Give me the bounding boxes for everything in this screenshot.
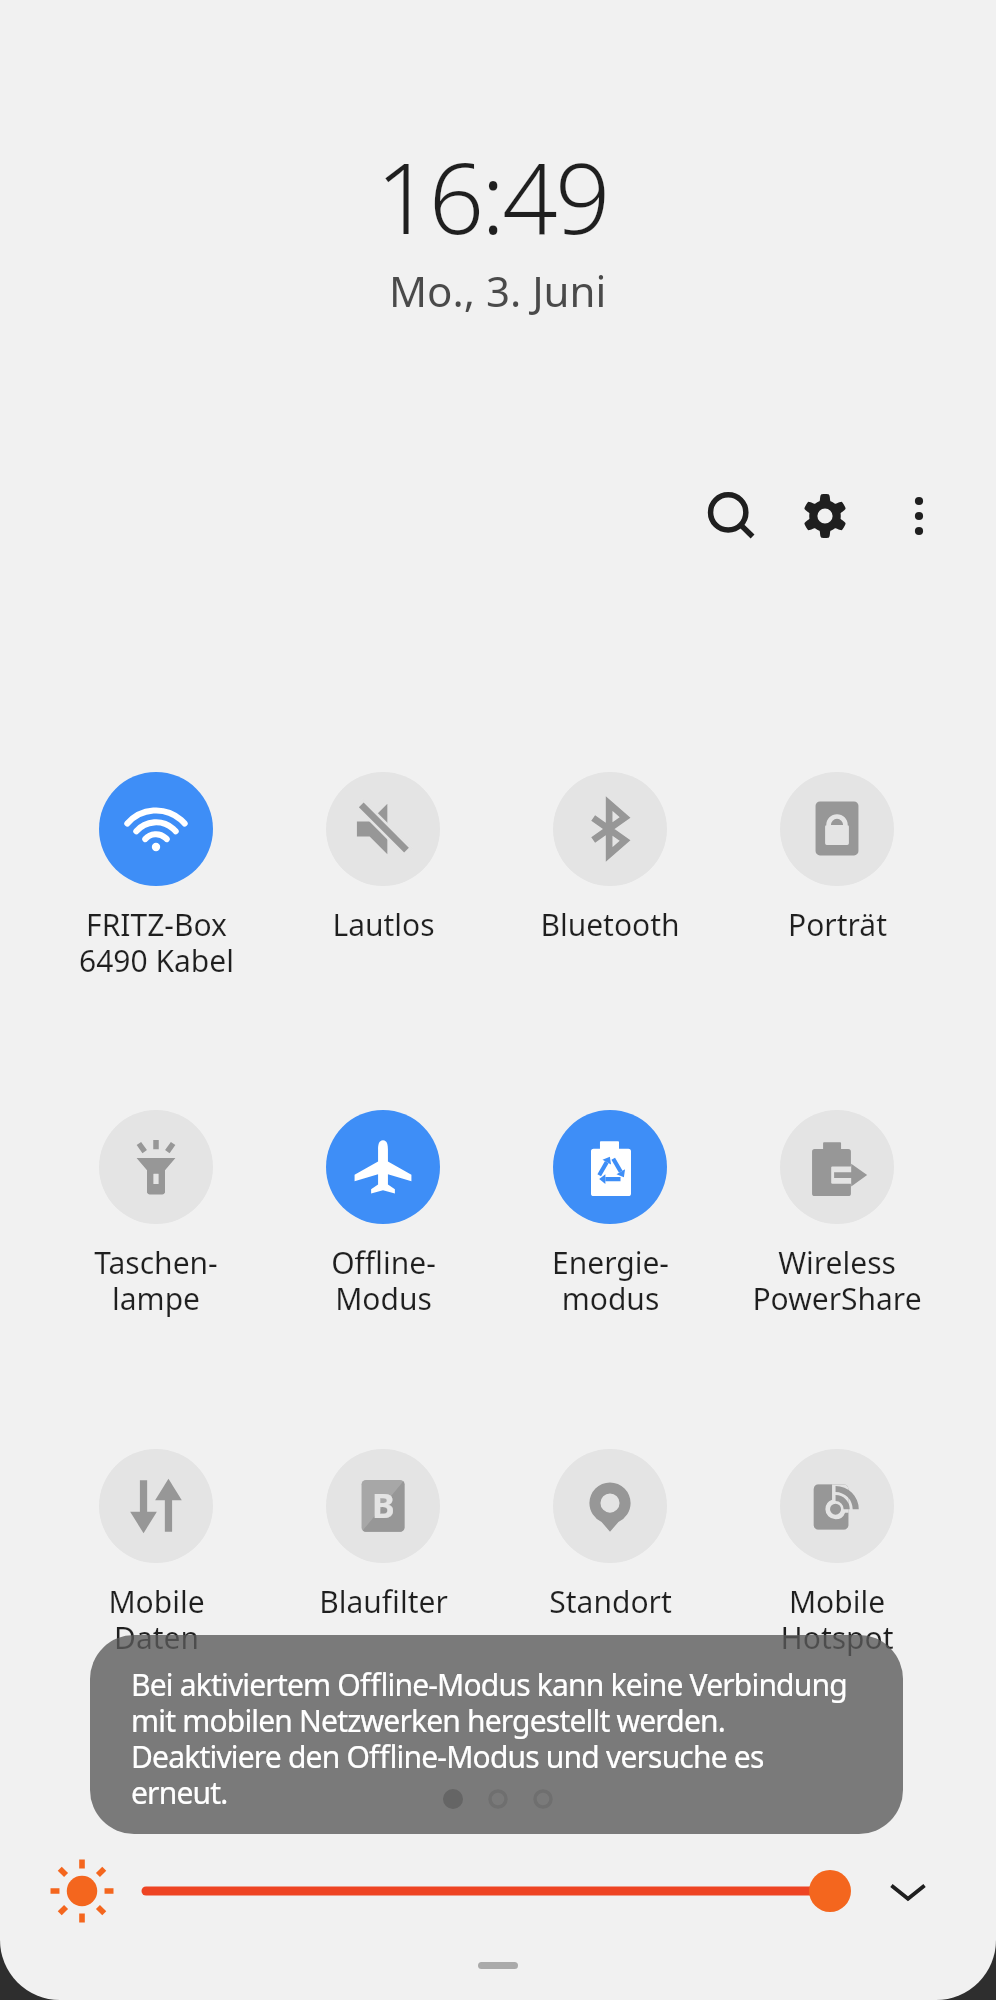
button[interactable]: Lautlos xyxy=(270,772,496,945)
staticText: B xyxy=(372,1482,395,1528)
button[interactable]: FRITZ-Box 6490 Kabel xyxy=(43,772,269,981)
staticText: Taschen- lampe xyxy=(94,1242,218,1319)
button[interactable]: Settings xyxy=(793,484,857,548)
button[interactable]: More options xyxy=(887,484,951,548)
staticText: FRITZ-Box 6490 Kabel xyxy=(79,904,234,981)
staticText: Bluetooth xyxy=(540,904,680,945)
button[interactable]: Brightness slider xyxy=(130,1857,870,1925)
staticText: Blaufilter xyxy=(319,1581,448,1622)
staticText: Energie- modus xyxy=(552,1242,669,1319)
button[interactable]: Mobile Daten xyxy=(43,1449,269,1658)
staticText: Bei aktiviertem Offline-Modus kann keine… xyxy=(131,1664,847,1813)
staticText: Standort xyxy=(549,1581,672,1622)
button[interactable]: Mobile Hotspot xyxy=(724,1449,950,1658)
button[interactable]: B xyxy=(270,1449,496,1622)
button[interactable]: Page 2 xyxy=(483,1784,513,1814)
staticText: Lautlos xyxy=(332,904,435,945)
button[interactable]: Page 1 xyxy=(438,1784,468,1814)
button[interactable]: Bluetooth xyxy=(497,772,723,945)
button[interactable]: Page 3 xyxy=(528,1784,558,1814)
button[interactable]: Brightness xyxy=(48,1857,116,1925)
button[interactable]: Expand quick settings xyxy=(876,1859,940,1923)
staticText: Porträt xyxy=(788,904,887,945)
staticText: Mobile Hotspot xyxy=(780,1581,894,1658)
button[interactable]: Wireless PowerShare xyxy=(724,1110,950,1319)
button[interactable]: Search xyxy=(699,486,763,550)
button[interactable]: Energie- modus xyxy=(497,1110,723,1319)
staticText: Mo., 3. Juni xyxy=(389,262,607,319)
staticText: 16:49 xyxy=(376,130,608,262)
button[interactable]: Offline- Modus xyxy=(270,1110,496,1319)
staticText: Offline- Modus xyxy=(331,1242,436,1319)
staticText: Mobile Daten xyxy=(108,1581,205,1658)
staticText: Wireless PowerShare xyxy=(752,1242,922,1319)
button[interactable]: Taschen- lampe xyxy=(43,1110,269,1319)
button[interactable]: Porträt xyxy=(724,772,950,945)
button[interactable]: Standort xyxy=(497,1449,723,1622)
